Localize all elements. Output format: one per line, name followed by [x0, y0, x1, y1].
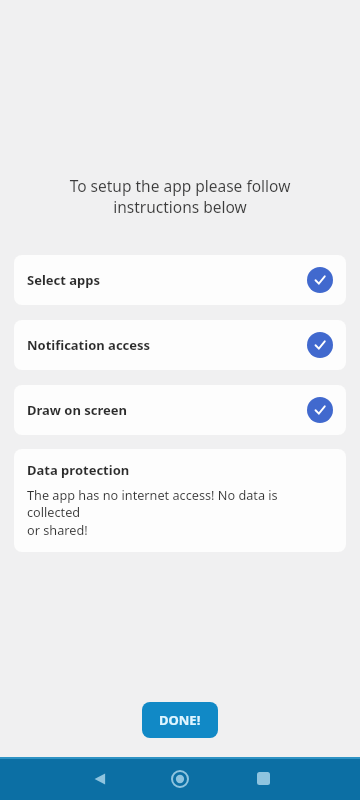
staticText: Data protection [27, 461, 130, 479]
staticText: To setup the app please follow instructi… [24, 175, 336, 218]
staticText: Notification access [27, 336, 151, 354]
staticText: The app has no internet access! No data … [27, 486, 333, 539]
button[interactable]: Completed [307, 332, 333, 358]
button[interactable]: Notification access [14, 320, 346, 370]
staticText: Select apps [27, 271, 101, 289]
button[interactable]: Data protection [14, 449, 346, 552]
button[interactable]: Completed [307, 397, 333, 423]
staticText: DONE! [159, 711, 201, 729]
button[interactable]: Recent apps [241, 757, 285, 800]
button[interactable]: Completed [307, 267, 333, 293]
staticText: Draw on screen [27, 401, 128, 419]
button[interactable]: DONE! [142, 702, 218, 738]
button[interactable]: Draw on screen [14, 385, 346, 435]
button[interactable]: Select apps [14, 255, 346, 305]
button[interactable]: Home [158, 757, 202, 800]
button[interactable]: Back [78, 757, 122, 800]
